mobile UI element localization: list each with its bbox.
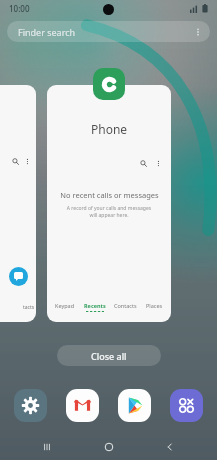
staticText: 10:00 (9, 3, 30, 14)
button[interactable]: Keypad (53, 301, 77, 310)
button[interactable]: Play Store (118, 389, 151, 422)
button[interactable]: Gmail (66, 389, 99, 422)
staticText: Phone (91, 121, 128, 137)
button[interactable]: Phone (47, 85, 171, 322)
staticText: tacts (23, 304, 35, 311)
staticText: Recents (84, 302, 106, 309)
button[interactable]: Places (144, 301, 165, 310)
button[interactable]: New message (9, 267, 28, 286)
staticText: A record of your calls and messages will… (63, 205, 155, 219)
button[interactable]: Home (94, 434, 124, 460)
button[interactable]: More options (153, 158, 163, 168)
button[interactable]: Galaxy Store (170, 389, 203, 422)
button[interactable]: Back (155, 434, 185, 460)
staticText: Places (146, 302, 163, 309)
button[interactable]: Close all (57, 345, 161, 366)
button[interactable]: Recents (82, 301, 108, 313)
button[interactable]: More options (190, 24, 206, 40)
other: Phone app (93, 68, 125, 100)
button[interactable]: Finder search (7, 21, 210, 42)
staticText: No recent calls or messages (60, 190, 159, 200)
button[interactable]: Recent apps (32, 434, 62, 460)
staticText: Finder search (18, 26, 76, 38)
button[interactable]: Contacts (112, 301, 139, 310)
button[interactable]: New message (0, 85, 36, 322)
staticText: Contacts (114, 302, 137, 309)
button[interactable]: Search (138, 158, 148, 168)
staticText: Keypad (55, 302, 75, 309)
staticText: Close all (91, 350, 127, 362)
button[interactable]: Settings (14, 389, 47, 422)
